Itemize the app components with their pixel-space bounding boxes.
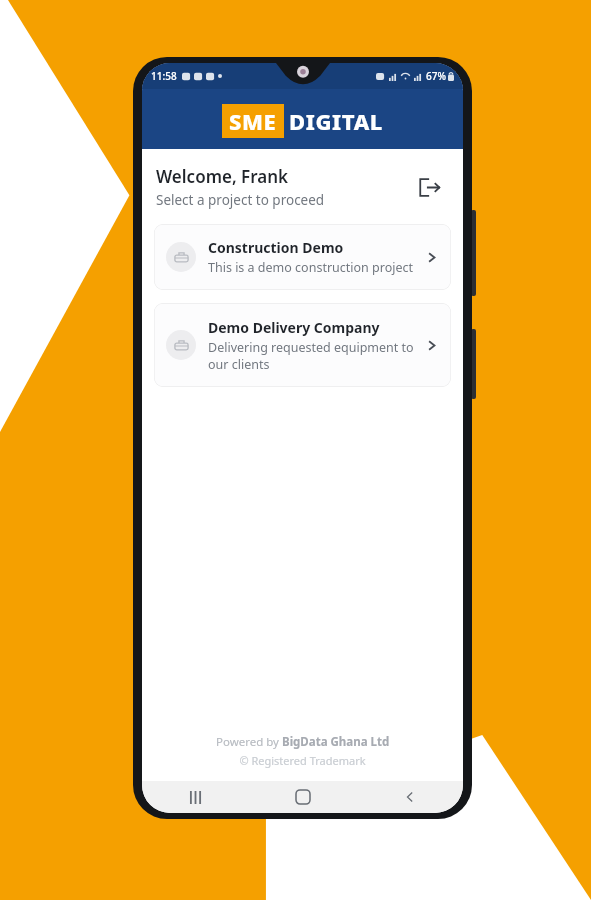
button[interactable]: Demo Delivery Company xyxy=(154,303,451,387)
staticText: DIGITAL xyxy=(289,106,384,136)
staticText: © Registered Trademark xyxy=(239,753,366,768)
staticText: Powered by xyxy=(216,734,282,750)
button[interactable]: Recents xyxy=(142,781,249,813)
staticText: BigData Ghana Ltd xyxy=(282,734,390,750)
staticText: Delivering requested equipment to our cl… xyxy=(208,339,416,372)
staticText: Select a project to proceed xyxy=(156,191,325,209)
staticText: SME xyxy=(229,106,277,136)
staticText: Welcome, Frank xyxy=(156,165,289,188)
staticText: 67% xyxy=(426,69,446,83)
staticText: This is a demo construction project xyxy=(208,259,414,276)
button[interactable]: Log out xyxy=(410,168,448,206)
staticText: Demo Delivery Company xyxy=(208,318,380,337)
button[interactable]: Construction Demo xyxy=(154,224,451,290)
button[interactable]: Home xyxy=(249,781,356,813)
button[interactable]: Back xyxy=(356,781,463,813)
staticText: Construction Demo xyxy=(208,238,344,257)
staticText: 11:58 xyxy=(151,69,177,83)
